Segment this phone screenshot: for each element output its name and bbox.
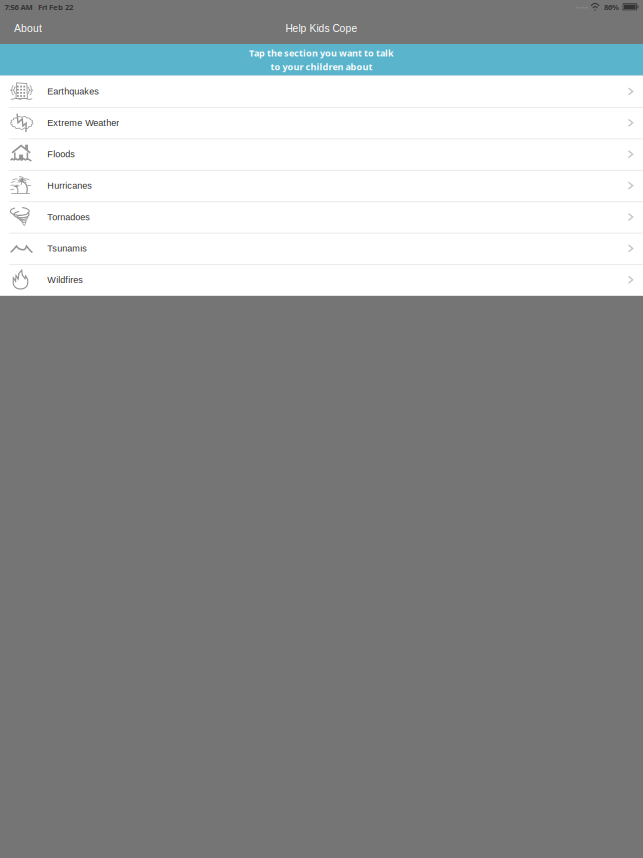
staticText: Floods: [47, 149, 75, 159]
staticText: Help Kids Cope: [285, 23, 357, 34]
staticText: Earthquakes: [47, 86, 99, 96]
staticText: Tornadoes: [47, 212, 90, 222]
button[interactable]: Earthquakes: [0, 76, 643, 107]
button[interactable]: Wildfires: [0, 264, 643, 295]
button[interactable]: Tsunamis: [0, 233, 643, 264]
staticText: Tap the section you want to talk: [249, 47, 394, 59]
button[interactable]: Tornadoes: [0, 201, 643, 233]
staticText: 86%: [604, 2, 619, 12]
staticText: Fri Feb 22: [38, 2, 73, 12]
button[interactable]: Floods: [0, 138, 643, 170]
staticText: Hurricanes: [47, 180, 92, 191]
button[interactable]: About: [8, 17, 48, 40]
staticText: About: [14, 23, 42, 34]
staticText: Wildfires: [47, 275, 83, 285]
button[interactable]: Hurricanes: [0, 170, 643, 201]
staticText: Tsunamis: [47, 243, 87, 253]
staticText: 7:56 AM: [4, 2, 32, 12]
staticText: Extreme Weather: [47, 118, 119, 128]
button[interactable]: Extreme Weather: [0, 107, 643, 138]
staticText: to your children about: [270, 60, 372, 73]
